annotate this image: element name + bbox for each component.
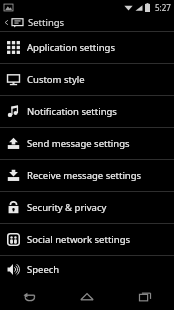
staticText: Social network settings — [27, 233, 131, 246]
button[interactable]: Home — [58, 283, 116, 310]
button[interactable]: Notification settings — [0, 96, 174, 127]
button[interactable]: Custom style — [0, 64, 174, 95]
button[interactable]: Up, Settings — [0, 14, 174, 31]
staticText: Notification settings — [27, 105, 117, 118]
staticText: Receive message settings — [27, 169, 142, 182]
button[interactable]: Application settings — [0, 32, 174, 63]
staticText: Custom style — [27, 73, 85, 86]
button[interactable]: Send message settings — [0, 128, 174, 159]
staticText: 5:27 — [155, 2, 171, 13]
staticText: Send message settings — [27, 137, 130, 150]
button[interactable]: Security & privacy — [0, 192, 174, 223]
staticText: Application settings — [27, 41, 115, 54]
button[interactable]: Recent apps — [116, 283, 174, 310]
button[interactable]: Back — [0, 283, 58, 310]
button[interactable]: Speech — [0, 256, 174, 283]
staticText: Settings — [28, 16, 65, 29]
button[interactable]: Social network settings — [0, 224, 174, 255]
staticText: Security & privacy — [27, 201, 107, 214]
staticText: Speech — [27, 263, 60, 276]
button[interactable]: Receive message settings — [0, 160, 174, 191]
